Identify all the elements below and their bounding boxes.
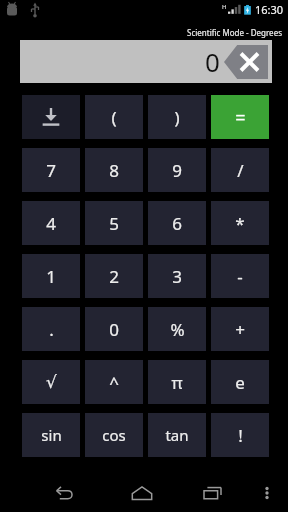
- button[interactable]: =: [211, 95, 269, 139]
- button[interactable]: 5: [85, 201, 143, 245]
- button[interactable]: 3: [148, 254, 206, 298]
- staticText: -: [237, 265, 243, 288]
- staticText: 0: [205, 44, 220, 79]
- staticText: cos: [102, 425, 126, 445]
- button[interactable]: More options: [252, 478, 282, 508]
- staticText: 6: [172, 212, 182, 235]
- staticText: =: [235, 105, 246, 130]
- staticText: .: [49, 318, 54, 341]
- staticText: 8: [109, 159, 119, 182]
- button[interactable]: Save: [22, 95, 80, 139]
- button[interactable]: 0: [85, 307, 143, 351]
- staticText: /: [237, 159, 244, 182]
- button[interactable]: !: [211, 413, 269, 457]
- button[interactable]: 8: [85, 148, 143, 192]
- staticText: sin: [41, 425, 62, 445]
- button[interactable]: 4: [22, 201, 80, 245]
- staticText: 0: [109, 318, 119, 341]
- staticText: 5: [109, 212, 119, 235]
- button[interactable]: Back: [44, 474, 82, 512]
- button[interactable]: Clear: [224, 45, 268, 79]
- button[interactable]: /: [211, 148, 269, 192]
- staticText: !: [238, 424, 243, 447]
- button[interactable]: 2: [85, 254, 143, 298]
- staticText: ): [174, 106, 180, 129]
- staticText: tan: [165, 425, 189, 445]
- staticText: 16:30: [255, 2, 284, 17]
- staticText: *: [235, 212, 245, 235]
- button[interactable]: sin: [22, 413, 80, 457]
- staticText: 9: [172, 159, 182, 182]
- staticText: 3: [172, 265, 182, 288]
- staticText: %: [170, 318, 185, 341]
- button[interactable]: Recent apps: [194, 474, 232, 512]
- staticText: e: [235, 371, 245, 394]
- button[interactable]: .: [22, 307, 80, 351]
- button[interactable]: cos: [85, 413, 143, 457]
- button[interactable]: ): [148, 95, 206, 139]
- staticText: π: [171, 371, 183, 394]
- button[interactable]: Home: [123, 474, 161, 512]
- staticText: Scientific Mode - Degrees: [187, 27, 282, 38]
- button[interactable]: e: [211, 360, 269, 404]
- button[interactable]: (: [85, 95, 143, 139]
- staticText: +: [235, 318, 245, 341]
- button[interactable]: +: [211, 307, 269, 351]
- staticText: (: [111, 106, 117, 129]
- staticText: 1: [46, 265, 56, 288]
- button[interactable]: ^: [85, 360, 143, 404]
- button[interactable]: -: [211, 254, 269, 298]
- button[interactable]: *: [211, 201, 269, 245]
- staticText: ^: [109, 371, 119, 394]
- staticText: √: [46, 372, 57, 392]
- button[interactable]: √: [22, 360, 80, 404]
- button[interactable]: 7: [22, 148, 80, 192]
- button[interactable]: 6: [148, 201, 206, 245]
- button[interactable]: π: [148, 360, 206, 404]
- staticText: 2: [109, 265, 119, 288]
- button[interactable]: %: [148, 307, 206, 351]
- staticText: H: [222, 3, 227, 11]
- button[interactable]: 9: [148, 148, 206, 192]
- button[interactable]: 1: [22, 254, 80, 298]
- staticText: 4: [46, 212, 56, 235]
- staticText: 7: [46, 159, 56, 182]
- button[interactable]: tan: [148, 413, 206, 457]
